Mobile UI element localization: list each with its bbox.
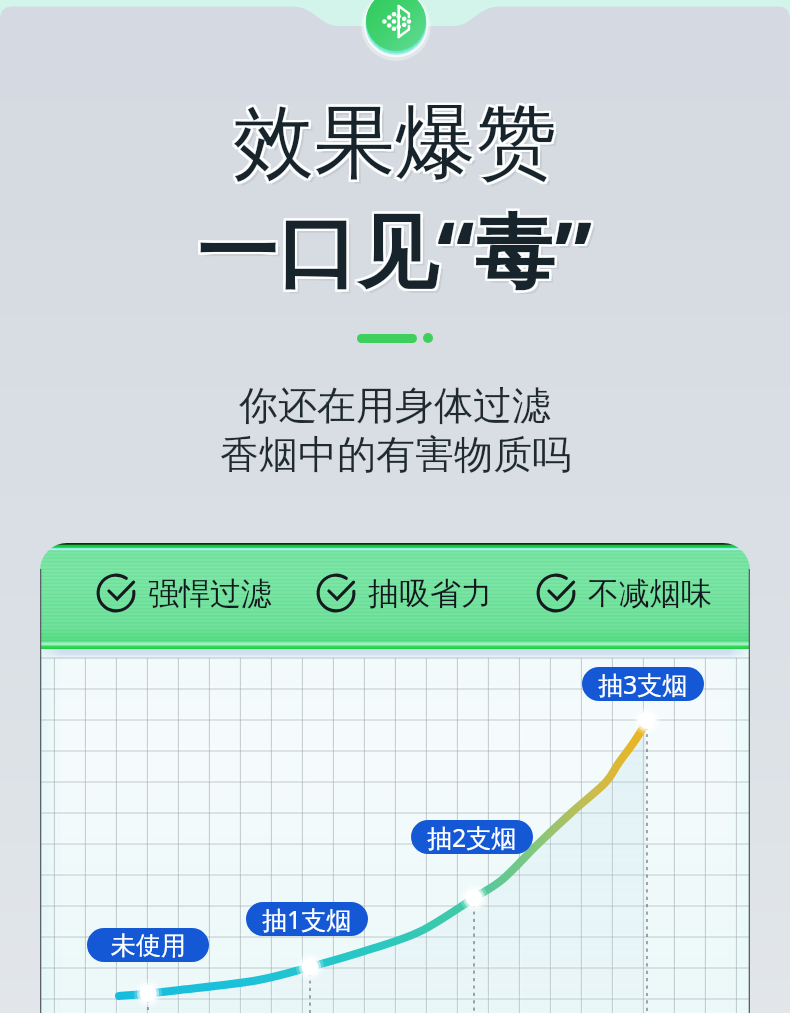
button[interactable]: 抽1支烟 (246, 902, 368, 936)
staticText: 效果爆赞 (233, 92, 557, 194)
staticText: 一口见“毒” (199, 196, 595, 305)
staticText: 抽2支烟 (427, 820, 517, 854)
staticText: 效果爆赞 (233, 90, 557, 192)
staticText: 一口见“毒” (197, 192, 593, 301)
staticText: 抽1支烟 (262, 902, 352, 936)
staticText: 一口见“毒” (199, 192, 595, 301)
staticText: 一口见“毒” (195, 196, 591, 305)
staticText: 未使用 (111, 930, 186, 961)
button[interactable]: 未使用 (87, 928, 209, 962)
staticText: 一口见“毒” (195, 192, 591, 301)
staticText: 你还在用身体过滤 (239, 381, 551, 430)
staticText: 效果爆赞 (235, 92, 559, 194)
button[interactable]: 强悍过滤 (95, 572, 272, 614)
staticText: 一口见“毒” (201, 198, 597, 307)
staticText: 强悍过滤 (148, 574, 272, 613)
staticText: 一口见“毒” (195, 194, 591, 303)
button[interactable]: 不减烟味 (535, 572, 712, 614)
staticText: 效果爆赞 (235, 90, 559, 192)
button[interactable]: 抽2支烟 (411, 820, 533, 854)
button[interactable]: 抽3支烟 (582, 667, 704, 701)
staticText: 一口见“毒” (199, 194, 595, 303)
staticText: 一口见“毒” (197, 196, 593, 305)
button[interactable]: Brand logo (354, 0, 438, 58)
staticText: 香烟中的有害物质吗 (220, 430, 571, 479)
staticText: 效果爆赞 (231, 90, 555, 192)
button[interactable]: 抽吸省力 (315, 572, 492, 614)
staticText: 不减烟味 (588, 574, 712, 613)
staticText: 效果爆赞 (231, 94, 555, 196)
staticText: 抽3支烟 (598, 667, 688, 701)
staticText: 一口见“毒” (197, 194, 593, 303)
staticText: 效果爆赞 (237, 96, 561, 198)
staticText: 效果爆赞 (231, 92, 555, 194)
staticText: 效果爆赞 (235, 94, 559, 196)
staticText: 效果爆赞 (233, 94, 557, 196)
staticText: 抽吸省力 (368, 574, 492, 613)
